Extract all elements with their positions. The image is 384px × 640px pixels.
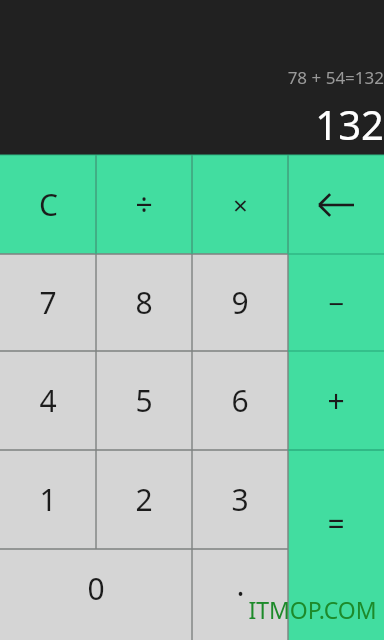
button[interactable]: 0 [0,549,192,640]
button[interactable]: 4 [0,351,96,450]
button[interactable]: + [288,351,384,450]
staticText: = [327,503,345,544]
staticText: 6 [231,380,249,421]
staticText: 132 [315,97,384,151]
staticText: 9 [231,282,249,323]
staticText: 0 [87,568,105,609]
button[interactable]: 7 [0,254,96,351]
button[interactable]: 8 [96,254,192,351]
staticText: + [327,380,345,421]
button[interactable]: × [192,155,288,254]
staticText: 3 [231,479,249,520]
staticText: 5 [135,380,153,421]
staticText: 78 + 54=132 [287,66,384,89]
staticText: × [233,187,248,222]
button[interactable]: C [0,155,96,254]
button[interactable]: 2 [96,450,192,549]
button[interactable]: = [288,450,384,640]
button[interactable]: − [288,254,384,351]
staticText: 4 [39,380,57,421]
button[interactable]: 5 [96,351,192,450]
button[interactable]: 6 [192,351,288,450]
button[interactable]: 9 [192,254,288,351]
button[interactable]: ÷ [96,155,192,254]
staticText: 1 [39,479,57,520]
staticText: − [328,284,345,322]
staticText: . [236,564,245,605]
staticText: ITMOP.COM [248,594,377,625]
button[interactable]: 1 [0,450,96,549]
staticText: C [39,184,58,225]
button[interactable]: . [192,549,288,640]
staticText: 2 [135,479,153,520]
staticText: 7 [39,282,57,323]
staticText: ÷ [135,184,153,225]
staticText: 8 [135,282,153,323]
button[interactable]: Backspace [288,155,384,254]
button[interactable]: 3 [192,450,288,549]
